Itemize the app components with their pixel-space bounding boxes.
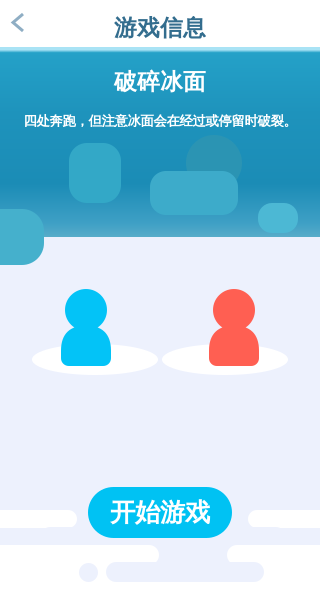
button[interactable]: 开始游戏	[88, 487, 232, 538]
staticText: 开始游戏	[110, 497, 210, 528]
staticText: 破碎冰面	[114, 68, 206, 96]
button[interactable]: Back	[0, 0, 39, 45]
staticText: 四处奔跑，但注意冰面会在经过或停留时破裂。	[23, 113, 296, 129]
staticText: 游戏信息	[114, 14, 206, 42]
